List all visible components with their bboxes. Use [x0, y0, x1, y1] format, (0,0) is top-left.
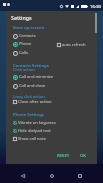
button[interactable]: Phone	[6, 40, 97, 48]
button[interactable]: Show call note	[13, 135, 46, 143]
staticText: Close after action	[18, 99, 52, 105]
button[interactable]: auto refresh	[57, 41, 86, 49]
button[interactable]: Call and close	[6, 82, 97, 90]
button[interactable]: Calls	[6, 49, 97, 57]
button[interactable]: Home	[43, 164, 61, 183]
staticText: Hide dialpad text	[18, 128, 51, 134]
staticText: 16:30	[90, 3, 101, 9]
staticText: OK	[80, 152, 87, 158]
staticText: Contacts Settings	[13, 62, 49, 68]
staticText: Contacts	[19, 33, 36, 39]
button[interactable]: Call and minimize	[6, 73, 97, 81]
staticText: Vibrate on keypress	[18, 120, 56, 126]
staticText: Start up screen	[13, 24, 45, 30]
staticText: Calls	[19, 50, 28, 56]
staticText: Call and minimize	[19, 74, 54, 80]
staticText: Phone Settings	[13, 111, 44, 117]
button[interactable]: Contacts	[6, 32, 97, 40]
staticText: Show call note	[18, 136, 46, 142]
button[interactable]: Back	[14, 164, 32, 183]
button[interactable]: OK	[74, 150, 92, 160]
staticText: Call and close	[19, 83, 46, 89]
button[interactable]: Vibrate on keypress	[13, 119, 56, 127]
staticText: auto refresh	[62, 42, 86, 48]
staticText: Long click action	[13, 94, 45, 100]
button[interactable]: RESET	[54, 150, 72, 160]
staticText: Settings	[11, 14, 32, 21]
staticText: RESET	[57, 152, 70, 158]
button[interactable]: Close after action	[13, 98, 52, 106]
staticText: Phone	[19, 41, 32, 47]
staticText: Click action	[13, 67, 35, 73]
button[interactable]: Recents	[71, 164, 89, 183]
button[interactable]: Hide dialpad text	[13, 127, 51, 135]
